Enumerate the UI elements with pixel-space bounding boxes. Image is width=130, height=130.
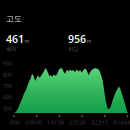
staticText: 461 xyxy=(6,32,24,46)
staticText: 800 xyxy=(3,71,12,78)
staticText: 2:32:26 xyxy=(69,119,86,126)
staticText: m xyxy=(24,37,29,44)
staticText: 4:14:04 xyxy=(113,119,130,126)
staticText: 고도 xyxy=(6,14,22,24)
staticText: 최저 xyxy=(6,46,16,53)
staticText: 600 xyxy=(3,94,12,101)
staticText: 700 xyxy=(3,82,12,90)
staticText: 0:50:49 xyxy=(25,119,42,126)
staticText: 1:41:38 xyxy=(47,119,64,126)
staticText: 900 xyxy=(3,60,12,67)
staticText: 500 xyxy=(3,105,12,112)
staticText: 최고 xyxy=(68,46,78,53)
staticText: 956 xyxy=(68,32,86,46)
staticText: 0:00 xyxy=(10,119,20,126)
staticText: m xyxy=(86,37,91,44)
staticText: 3:23:15 xyxy=(91,119,108,126)
